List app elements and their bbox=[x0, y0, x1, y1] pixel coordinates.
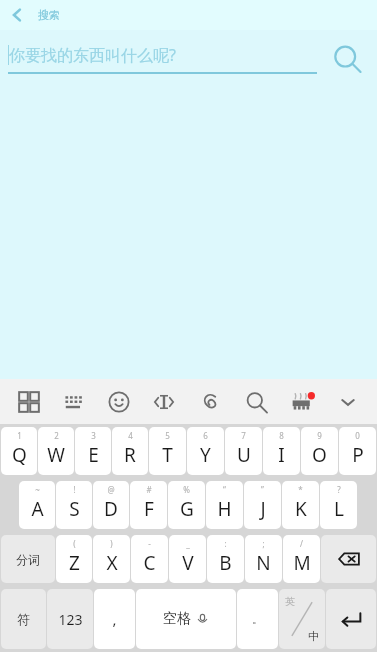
staticText: 。 bbox=[252, 612, 263, 626]
button[interactable]: ) bbox=[93, 535, 130, 583]
button[interactable]: Text edit bbox=[141, 379, 187, 424]
staticText: E bbox=[88, 442, 99, 468]
staticText: F bbox=[144, 496, 154, 522]
staticText: % bbox=[183, 484, 190, 495]
staticText: ” bbox=[261, 484, 264, 495]
button[interactable]: Emoji bbox=[96, 379, 141, 424]
staticText: 空格 bbox=[163, 610, 191, 628]
button[interactable]: * bbox=[282, 481, 319, 529]
staticText: _ bbox=[186, 538, 190, 549]
staticText: J bbox=[260, 496, 266, 522]
button[interactable]: ” bbox=[244, 481, 281, 529]
staticText: : bbox=[224, 538, 227, 549]
button[interactable]: 0 bbox=[339, 427, 376, 475]
staticText: 分词 bbox=[16, 552, 40, 567]
staticText: W bbox=[47, 442, 65, 468]
button[interactable]: 5 bbox=[149, 427, 186, 475]
staticText: O bbox=[312, 442, 327, 468]
button[interactable]: % bbox=[168, 481, 205, 529]
button[interactable]: ? bbox=[320, 481, 357, 529]
staticText: 2 bbox=[54, 430, 59, 441]
button[interactable]: : bbox=[207, 535, 244, 583]
staticText: 英 bbox=[285, 595, 295, 608]
staticText: 中 bbox=[308, 629, 319, 643]
staticText: C bbox=[143, 550, 156, 576]
staticText: A bbox=[31, 496, 44, 522]
staticText: ( bbox=[73, 538, 76, 549]
button[interactable]: “ bbox=[206, 481, 243, 529]
staticText: 0 bbox=[355, 430, 360, 441]
button[interactable]: 8 bbox=[263, 427, 300, 475]
button[interactable]: Apps bbox=[6, 379, 51, 424]
staticText: * bbox=[298, 484, 303, 495]
staticText: K bbox=[295, 496, 307, 522]
button[interactable]: 123 bbox=[47, 589, 93, 649]
staticText: V bbox=[182, 550, 194, 576]
staticText: U bbox=[237, 442, 251, 468]
staticText: ) bbox=[110, 538, 113, 549]
button[interactable]: Key bbox=[321, 535, 376, 583]
staticText: 你要找的东西叫什么呢? bbox=[9, 44, 176, 66]
staticText: ; bbox=[262, 538, 265, 549]
staticText: “ bbox=[223, 484, 226, 495]
staticText: S bbox=[69, 496, 80, 522]
button[interactable]: ~ bbox=[19, 481, 55, 529]
button[interactable]: / bbox=[283, 535, 320, 583]
button[interactable]: Keyboard layout bbox=[51, 379, 96, 424]
staticText: Q bbox=[12, 442, 27, 468]
button[interactable]: 4 bbox=[112, 427, 148, 475]
staticText: 5 bbox=[165, 430, 170, 441]
staticText: 4 bbox=[128, 430, 133, 441]
button[interactable]: ! bbox=[56, 481, 92, 529]
staticText: Y bbox=[200, 442, 211, 468]
button[interactable]: 你要找的东西叫什么呢? bbox=[8, 44, 317, 74]
button[interactable]: Back bbox=[0, 0, 72, 30]
button[interactable]: - bbox=[131, 535, 168, 583]
button[interactable]: 2 bbox=[38, 427, 74, 475]
button[interactable]: @ bbox=[93, 481, 129, 529]
staticText: L bbox=[334, 496, 344, 522]
staticText: @ bbox=[107, 484, 115, 495]
staticText: H bbox=[217, 496, 232, 522]
button[interactable]: ( bbox=[56, 535, 92, 583]
button[interactable]: 9 bbox=[301, 427, 338, 475]
staticText: G bbox=[180, 496, 194, 522]
button[interactable]: 1 bbox=[1, 427, 37, 475]
staticText: 符 bbox=[17, 611, 30, 627]
staticText: / bbox=[300, 538, 303, 549]
staticText: 1 bbox=[17, 430, 22, 441]
staticText: M bbox=[293, 550, 311, 576]
staticText: N bbox=[256, 550, 271, 576]
button[interactable]: Clipboard bbox=[187, 379, 233, 424]
button[interactable]: 。 bbox=[237, 589, 278, 649]
button[interactable]: Themes bbox=[279, 379, 325, 424]
button[interactable]: # bbox=[130, 481, 167, 529]
staticText: 7 bbox=[241, 430, 246, 441]
button[interactable]: _ bbox=[169, 535, 206, 583]
staticText: T bbox=[162, 442, 173, 468]
button[interactable]: 7 bbox=[225, 427, 262, 475]
button[interactable]: 分词 bbox=[1, 535, 55, 583]
staticText: I bbox=[278, 442, 285, 468]
button[interactable]: Switch language bbox=[279, 589, 325, 649]
button[interactable]: 空格 bbox=[136, 589, 236, 649]
button[interactable]: 3 bbox=[75, 427, 111, 475]
staticText: 3 bbox=[91, 430, 96, 441]
button[interactable]: Hide keyboard bbox=[325, 379, 371, 424]
button[interactable]: , bbox=[94, 589, 135, 649]
button[interactable]: Search bbox=[233, 379, 279, 424]
button[interactable]: Search bbox=[317, 35, 377, 83]
staticText: B bbox=[219, 550, 232, 576]
button[interactable]: ; bbox=[245, 535, 282, 583]
staticText: X bbox=[106, 550, 118, 576]
button[interactable]: 符 bbox=[1, 589, 46, 649]
button[interactable]: 6 bbox=[187, 427, 224, 475]
staticText: - bbox=[148, 538, 151, 549]
button[interactable]: Key bbox=[326, 589, 376, 649]
staticText: P bbox=[352, 442, 364, 468]
staticText: 8 bbox=[279, 430, 284, 441]
staticText: ! bbox=[73, 484, 76, 495]
staticText: # bbox=[146, 484, 152, 495]
staticText: , bbox=[112, 609, 117, 629]
staticText: 搜索 bbox=[38, 8, 60, 22]
